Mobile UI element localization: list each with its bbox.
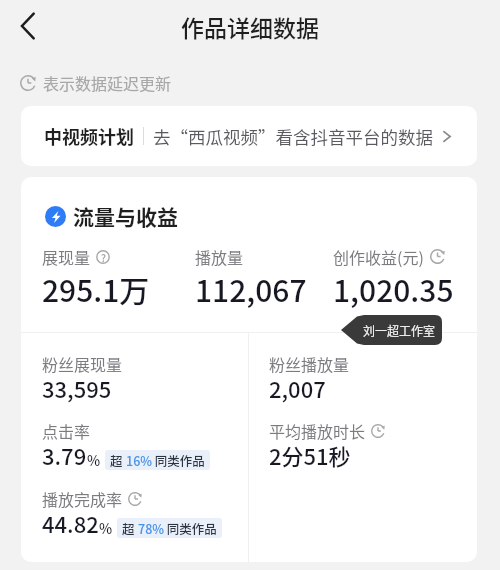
staticText: 2,007 — [269, 372, 326, 404]
staticText: 超 — [122, 519, 138, 537]
button[interactable]: 平均播放时长 — [269, 419, 385, 474]
button[interactable]: 播放完成率 — [42, 487, 222, 542]
staticText: 44.82 — [42, 507, 99, 539]
staticText: 去“西瓜视频”看含抖音平台的数据 — [153, 124, 433, 149]
button[interactable]: 点击率 — [42, 419, 210, 474]
staticText: 播放完成率 — [42, 487, 123, 510]
staticText: 超 — [110, 451, 126, 469]
button[interactable]: 粉丝展现量 — [42, 352, 123, 407]
staticText: 粉丝展现量 — [42, 352, 123, 375]
staticText: 2分51秒 — [269, 439, 351, 471]
button[interactable]: 粉丝播放量 — [269, 352, 350, 407]
staticText: 点击率 — [42, 419, 91, 442]
staticText: 33,595 — [42, 372, 112, 404]
staticText: 3.79 — [42, 439, 87, 471]
button[interactable]: 创作收益(元) — [333, 245, 454, 311]
staticText: 平均播放时长 — [269, 419, 366, 442]
staticText: % — [99, 518, 113, 538]
staticText: 78% — [138, 519, 164, 537]
staticText: 作品详细数据 — [181, 10, 319, 43]
staticText: 表示数据延迟更新 — [43, 71, 172, 94]
staticText: % — [87, 450, 101, 470]
staticText: 刘一超工作室 — [363, 322, 436, 339]
staticText: 创作收益(元) — [333, 245, 424, 268]
staticText: 粉丝播放量 — [269, 352, 350, 375]
button[interactable]: Back — [6, 4, 50, 48]
staticText: ? — [101, 250, 106, 264]
staticText: 295.1万 — [42, 267, 150, 310]
staticText: 流量与收益 — [73, 201, 178, 231]
staticText: 16% — [126, 451, 152, 469]
button[interactable]: 中视频计划 — [21, 106, 477, 166]
staticText: 同类作品 — [164, 519, 217, 537]
staticText: 同类作品 — [152, 451, 205, 469]
staticText: 112,067 — [195, 267, 307, 310]
button[interactable]: 展现量 — [42, 245, 150, 311]
staticText: 中视频计划 — [44, 123, 134, 149]
staticText: 1,020.35 — [333, 267, 454, 310]
button[interactable]: 播放量 — [195, 245, 307, 311]
staticText: 展现量 — [42, 245, 91, 268]
staticText: 播放量 — [195, 245, 244, 268]
